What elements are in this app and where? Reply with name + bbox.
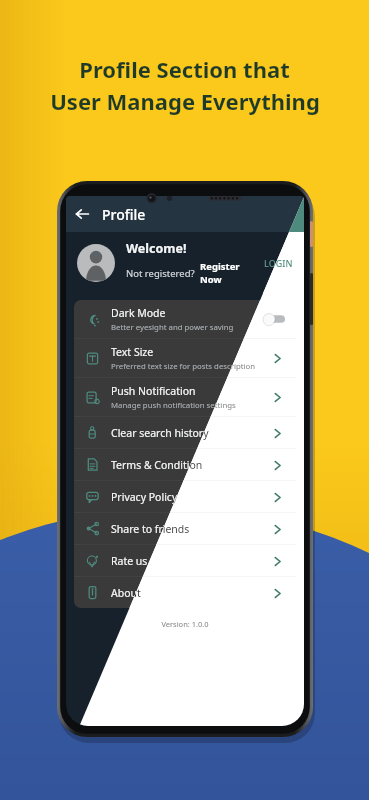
button[interactable]: Clear search history	[74, 417, 296, 448]
button[interactable]: About	[74, 577, 296, 608]
button[interactable]: Text Size	[74, 339, 296, 377]
button[interactable]: Push Notification	[74, 378, 296, 416]
button[interactable]: Privacy Policy	[74, 481, 296, 512]
staticText: User Manage Everything	[50, 86, 320, 116]
button[interactable]: Share to friends	[74, 513, 296, 544]
staticText: Preferred text size for posts descriptio…	[111, 361, 256, 372]
button[interactable]: Text Size	[269, 350, 285, 366]
staticText: Better eyesight and power saving	[111, 322, 234, 333]
button[interactable]: LOGIN	[260, 257, 293, 269]
button[interactable]: Dark mode toggle	[262, 313, 285, 325]
staticText: About	[111, 586, 141, 600]
staticText: Not registered?	[126, 267, 195, 280]
staticText: Dark Mode	[111, 306, 166, 320]
staticText: Manage push notification settings	[111, 400, 236, 411]
staticText: Rate us	[111, 554, 148, 568]
staticText: Text Size	[111, 345, 154, 359]
staticText: Terms & Condition	[111, 458, 203, 472]
staticText: Register Now	[200, 260, 260, 286]
button[interactable]: Dark Mode	[74, 300, 296, 338]
staticText: Rate us	[111, 554, 148, 568]
staticText: Not registered?	[126, 267, 195, 280]
button[interactable]: Share to friends	[74, 513, 296, 544]
button[interactable]: Terms & Condition	[269, 457, 285, 473]
button[interactable]: Dark mode toggle	[262, 313, 285, 325]
button[interactable]: Clear search history	[269, 425, 285, 441]
button[interactable]: Terms & Condition	[74, 449, 296, 480]
button[interactable]: Clear search history	[269, 425, 285, 441]
button[interactable]: Profile photo	[77, 244, 115, 282]
staticText: Privacy Policy	[111, 490, 178, 504]
button[interactable]: Privacy Policy	[269, 489, 285, 505]
button[interactable]: Text Size	[74, 339, 296, 377]
button[interactable]: Rate us	[269, 553, 285, 569]
staticText: Text Size	[111, 345, 154, 359]
button[interactable]: Back	[66, 198, 98, 230]
button[interactable]: Rate us	[74, 545, 296, 576]
button[interactable]: Register Now	[200, 260, 260, 286]
button[interactable]: Rate us	[74, 545, 296, 576]
staticText: Welcome!	[126, 240, 187, 257]
button[interactable]: About	[74, 577, 296, 608]
staticText: Clear search history	[111, 426, 209, 440]
staticText: Version: 1.0.0	[66, 619, 304, 629]
staticText: Terms & Condition	[111, 458, 203, 472]
staticText: Better eyesight and power saving	[111, 322, 234, 333]
button[interactable]: Register Now	[200, 260, 260, 286]
button[interactable]: Back	[66, 198, 98, 230]
staticText: Profile	[102, 205, 146, 224]
button[interactable]: Clear search history	[74, 417, 296, 448]
button[interactable]: Rate us	[269, 553, 285, 569]
button[interactable]: Push Notification	[74, 378, 296, 416]
staticText: About	[111, 586, 141, 600]
staticText: LOGIN	[264, 257, 293, 269]
button[interactable]: About	[269, 585, 285, 601]
staticText: Dark Mode	[111, 306, 166, 320]
staticText: Share to friends	[111, 522, 190, 536]
button[interactable]: LOGIN	[260, 257, 293, 269]
button[interactable]: Privacy Policy	[269, 489, 285, 505]
staticText: LOGIN	[264, 257, 293, 269]
staticText: Privacy Policy	[111, 490, 178, 504]
staticText: Profile	[102, 205, 146, 224]
button[interactable]: Dark Mode	[74, 300, 296, 338]
staticText: Push Notification	[111, 384, 196, 398]
button[interactable]: About	[269, 585, 285, 601]
button[interactable]: Profile photo	[77, 244, 115, 282]
staticText: Profile Section that	[79, 54, 290, 84]
staticText: Version: 1.0.0	[66, 619, 304, 629]
staticText: Manage push notification settings	[111, 400, 236, 411]
button[interactable]: Push Notification	[269, 389, 285, 405]
button[interactable]: Terms & Condition	[269, 457, 285, 473]
staticText: Push Notification	[111, 384, 196, 398]
staticText: Preferred text size for posts descriptio…	[111, 361, 256, 372]
button[interactable]: Terms & Condition	[74, 449, 296, 480]
button[interactable]: Share to friends	[269, 521, 285, 537]
button[interactable]: Privacy Policy	[74, 481, 296, 512]
button[interactable]: Text Size	[269, 350, 285, 366]
staticText: Welcome!	[126, 240, 187, 257]
staticText: Register Now	[200, 260, 260, 286]
staticText: Clear search history	[111, 426, 209, 440]
button[interactable]: Push Notification	[269, 389, 285, 405]
button[interactable]: Share to friends	[269, 521, 285, 537]
staticText: Share to friends	[111, 522, 190, 536]
